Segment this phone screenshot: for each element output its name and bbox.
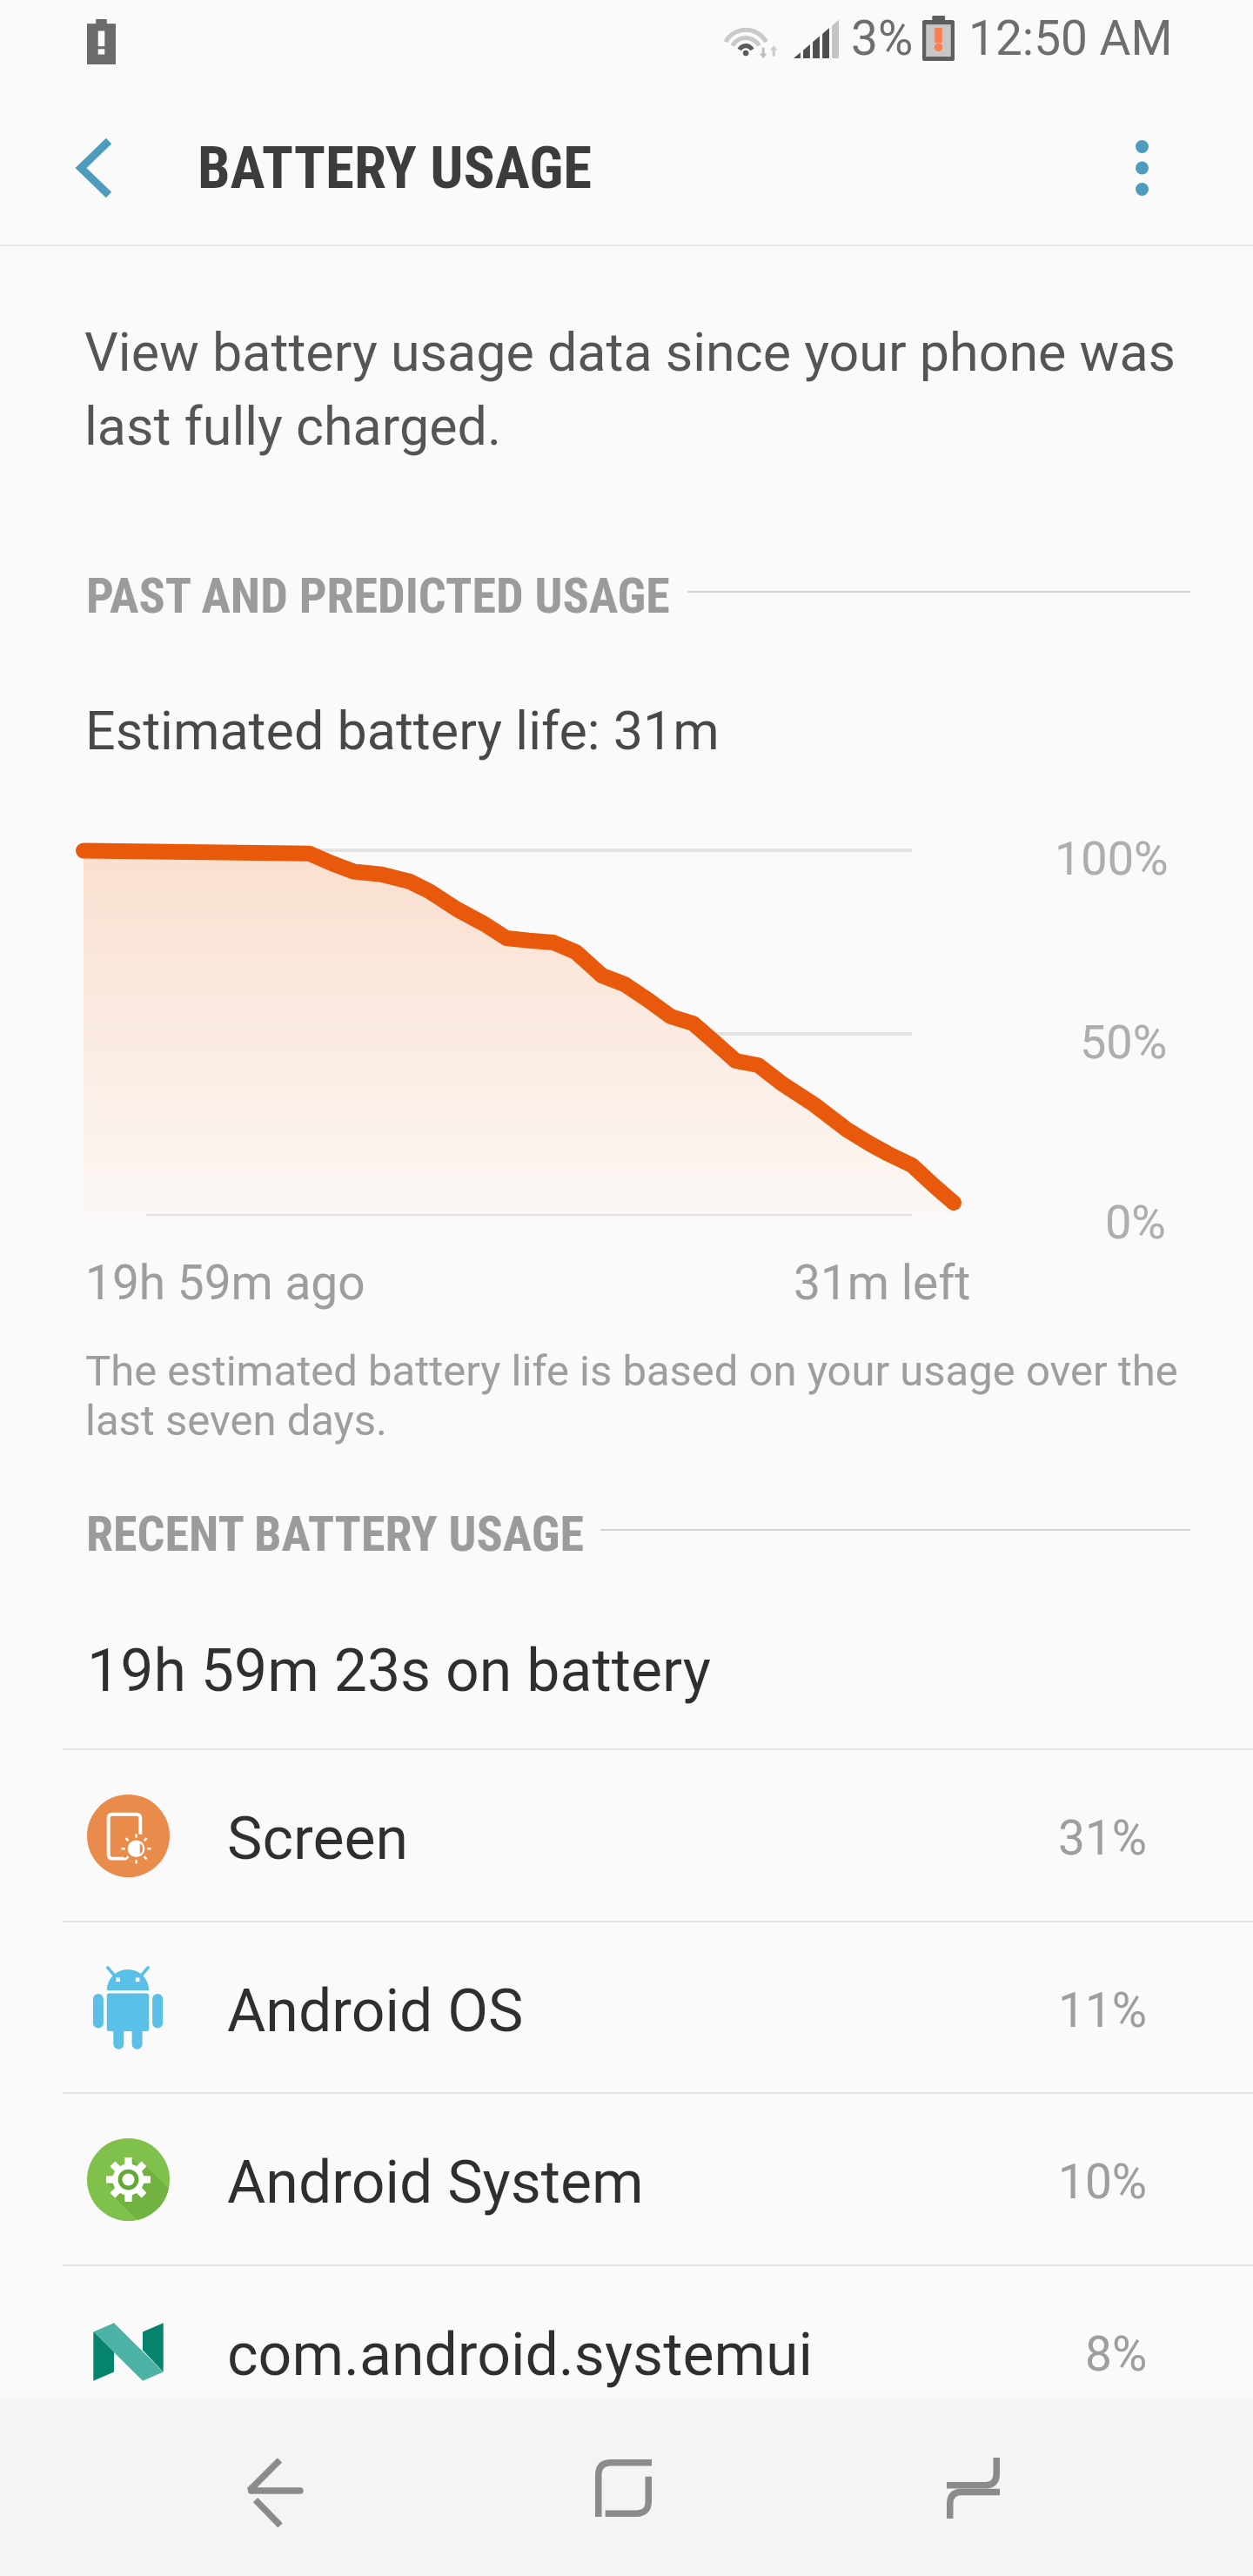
button[interactable]: Android System bbox=[0, 2093, 1253, 2264]
button[interactable]: com.android.systemui bbox=[0, 2265, 1253, 2437]
button[interactable]: Home bbox=[519, 2399, 727, 2576]
staticText: Estimated battery life: 31m bbox=[85, 701, 720, 762]
button[interactable]: More options bbox=[1081, 81, 1203, 254]
staticText: The estimated battery life is based on y… bbox=[85, 1346, 1178, 1446]
staticText: 31m left bbox=[794, 1255, 971, 1311]
staticText: 19h 59m ago bbox=[85, 1255, 365, 1311]
button[interactable]: Back bbox=[169, 2399, 378, 2576]
button[interactable]: Screen bbox=[0, 1749, 1253, 1921]
staticText: 3% bbox=[851, 10, 914, 66]
staticText: 8% bbox=[1085, 2326, 1148, 2382]
staticText: 100% bbox=[1055, 832, 1169, 886]
button[interactable]: Recent apps bbox=[868, 2399, 1077, 2576]
staticText: 11% bbox=[1058, 1982, 1148, 2038]
staticText: com.android.systemui bbox=[227, 2323, 814, 2389]
staticText: Screen bbox=[227, 1807, 409, 1873]
staticText: View battery usage data since your phone… bbox=[84, 312, 1176, 460]
staticText: 0% bbox=[1105, 1196, 1166, 1250]
staticText: 10% bbox=[1058, 2154, 1148, 2210]
staticText: RECENT BATTERY USAGE bbox=[86, 1511, 584, 1561]
button[interactable]: Navigate up bbox=[38, 81, 151, 254]
staticText: BATTERY USAGE bbox=[198, 134, 593, 203]
staticText: PAST AND PREDICTED USAGE bbox=[86, 573, 670, 623]
staticText: Android System bbox=[227, 2150, 644, 2217]
staticText: 19h 59m 23s on battery bbox=[87, 1637, 711, 1705]
staticText: 50% bbox=[1080, 1016, 1168, 1070]
staticText: Android OS bbox=[227, 1979, 524, 2045]
staticText: 12:50 AM bbox=[968, 10, 1173, 66]
button[interactable]: Android OS bbox=[0, 1922, 1253, 2093]
staticText: 31% bbox=[1058, 1810, 1148, 1866]
